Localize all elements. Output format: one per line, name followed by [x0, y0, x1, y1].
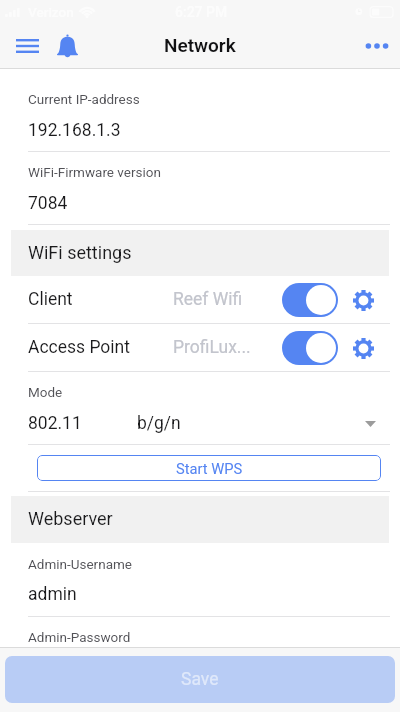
- button[interactable]: Access Point settings: [348, 333, 378, 363]
- button[interactable]: Save: [5, 656, 395, 703]
- button[interactable]: Open navigation menu: [8, 29, 46, 63]
- staticText: Save: [181, 669, 219, 690]
- staticText: WiFi-Firmware version: [28, 164, 161, 180]
- staticText: 802.11: [28, 413, 82, 434]
- button[interactable]: Enable Access Point: [282, 331, 338, 365]
- staticText: admin: [28, 584, 77, 605]
- button[interactable]: Enable Client: [282, 283, 338, 317]
- button[interactable]: Start WPS: [37, 455, 381, 481]
- button[interactable]: Access Point: [0, 324, 400, 371]
- staticText: b/g/n: [137, 413, 181, 434]
- button[interactable]: Client: [0, 276, 400, 323]
- staticText: 192.168.1.3: [28, 120, 121, 141]
- staticText: 7084: [28, 193, 68, 214]
- button[interactable]: More options: [359, 26, 395, 66]
- staticText: Current IP-address: [28, 91, 140, 107]
- staticText: WiFi settings: [28, 242, 132, 263]
- staticText: Start WPS: [176, 460, 243, 477]
- staticText: Network: [164, 34, 236, 56]
- staticText: Access Point: [28, 337, 130, 358]
- staticText: Admin-Username: [28, 556, 132, 572]
- button[interactable]: 802.11: [0, 413, 400, 434]
- staticText: ProfiLux...: [173, 337, 251, 358]
- other: Change mode: [365, 421, 376, 427]
- button[interactable]: Notifications: [50, 28, 85, 64]
- button[interactable]: Client settings: [348, 285, 378, 315]
- staticText: Mode: [28, 384, 63, 400]
- staticText: Admin-Password: [28, 629, 131, 645]
- staticText: Client: [28, 289, 73, 310]
- staticText: Webserver: [28, 508, 113, 529]
- staticText: Reef Wifi: [173, 289, 243, 310]
